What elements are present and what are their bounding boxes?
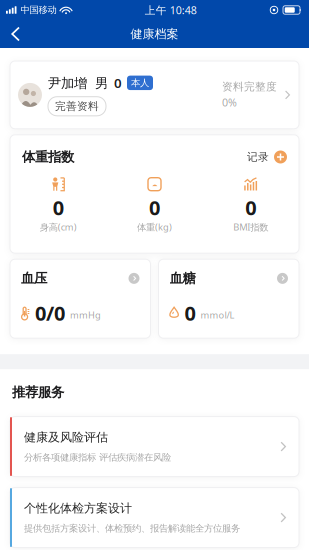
staticText: 0: [53, 194, 64, 221]
staticText: 尹加增 男 0: [48, 74, 122, 92]
staticText: 中国移动: [20, 4, 56, 16]
staticText: 体重指数: [22, 149, 74, 165]
staticText: 本人: [131, 77, 149, 89]
staticText: 健康档案: [130, 27, 178, 41]
staticText: 完善资料: [55, 100, 99, 113]
staticText: 0: [149, 194, 160, 221]
staticText: 血糖: [169, 270, 195, 287]
button[interactable]: 尹加增 男 0: [10, 61, 299, 129]
staticText: 个性化体检方案设计: [24, 501, 132, 516]
staticText: BMI指数: [233, 221, 268, 233]
button[interactable]: 健康及风险评估: [10, 417, 299, 477]
button[interactable]: 个性化体检方案设计: [10, 488, 299, 548]
staticText: 身高(cm): [40, 221, 77, 233]
staticText: 0: [184, 300, 195, 326]
button[interactable]: 返回: [0, 20, 42, 48]
staticText: mmHg: [70, 309, 101, 321]
staticText: 记录: [247, 150, 269, 163]
staticText: 0: [245, 194, 256, 221]
button[interactable]: 血压: [10, 259, 150, 338]
staticText: 分析各项健康指标 评估疾病潜在风险: [24, 452, 171, 463]
staticText: 体重(kg): [137, 221, 172, 233]
staticText: 上午 10:48: [145, 3, 197, 17]
staticText: 0/0: [35, 300, 65, 326]
staticText: 健康及风险评估: [24, 430, 108, 445]
staticText: 资料完整度: [222, 80, 277, 93]
staticText: mmol/L: [200, 309, 234, 321]
staticText: 血压: [21, 270, 47, 287]
staticText: 提供包括方案设计、体检预约、报告解读能全方位服务: [24, 523, 240, 534]
button[interactable]: 记录: [247, 150, 287, 163]
staticText: 0%: [222, 95, 237, 110]
staticText: 推荐服务: [12, 384, 64, 401]
button[interactable]: 血糖: [158, 259, 299, 338]
